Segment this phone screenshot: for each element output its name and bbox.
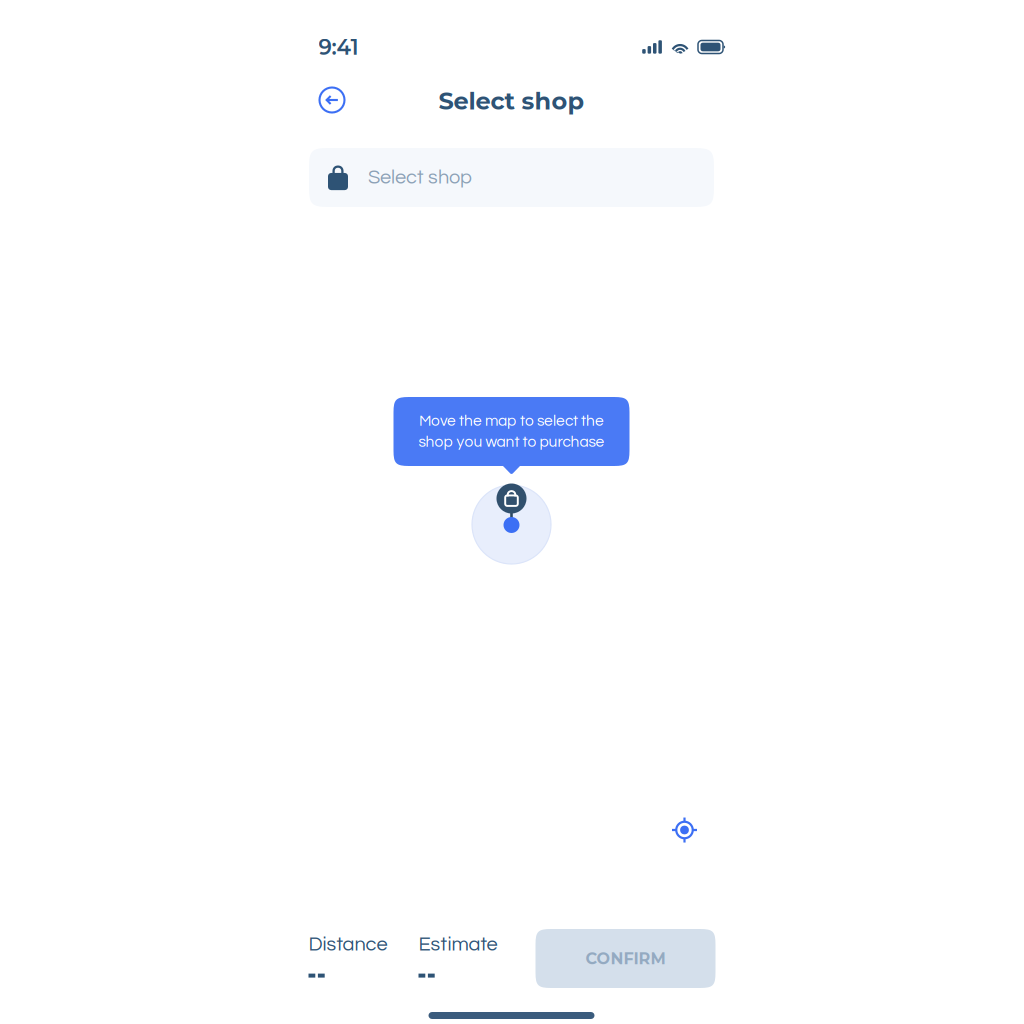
staticText: shop you want to purchase [418, 434, 604, 450]
staticText: Move the map to select the [419, 413, 604, 429]
staticText: Distance [308, 934, 387, 955]
button[interactable]: Locate me [662, 808, 706, 852]
staticText: Select shop [438, 86, 584, 116]
staticText: Select shop [368, 167, 472, 188]
button[interactable]: Back [310, 78, 354, 122]
staticText: CONFIRM [585, 949, 665, 968]
staticText: Estimate [418, 934, 497, 955]
button[interactable]: CONFIRM [535, 929, 715, 988]
staticText: 9:41 [318, 34, 358, 60]
button[interactable]: Select shop [309, 148, 714, 207]
